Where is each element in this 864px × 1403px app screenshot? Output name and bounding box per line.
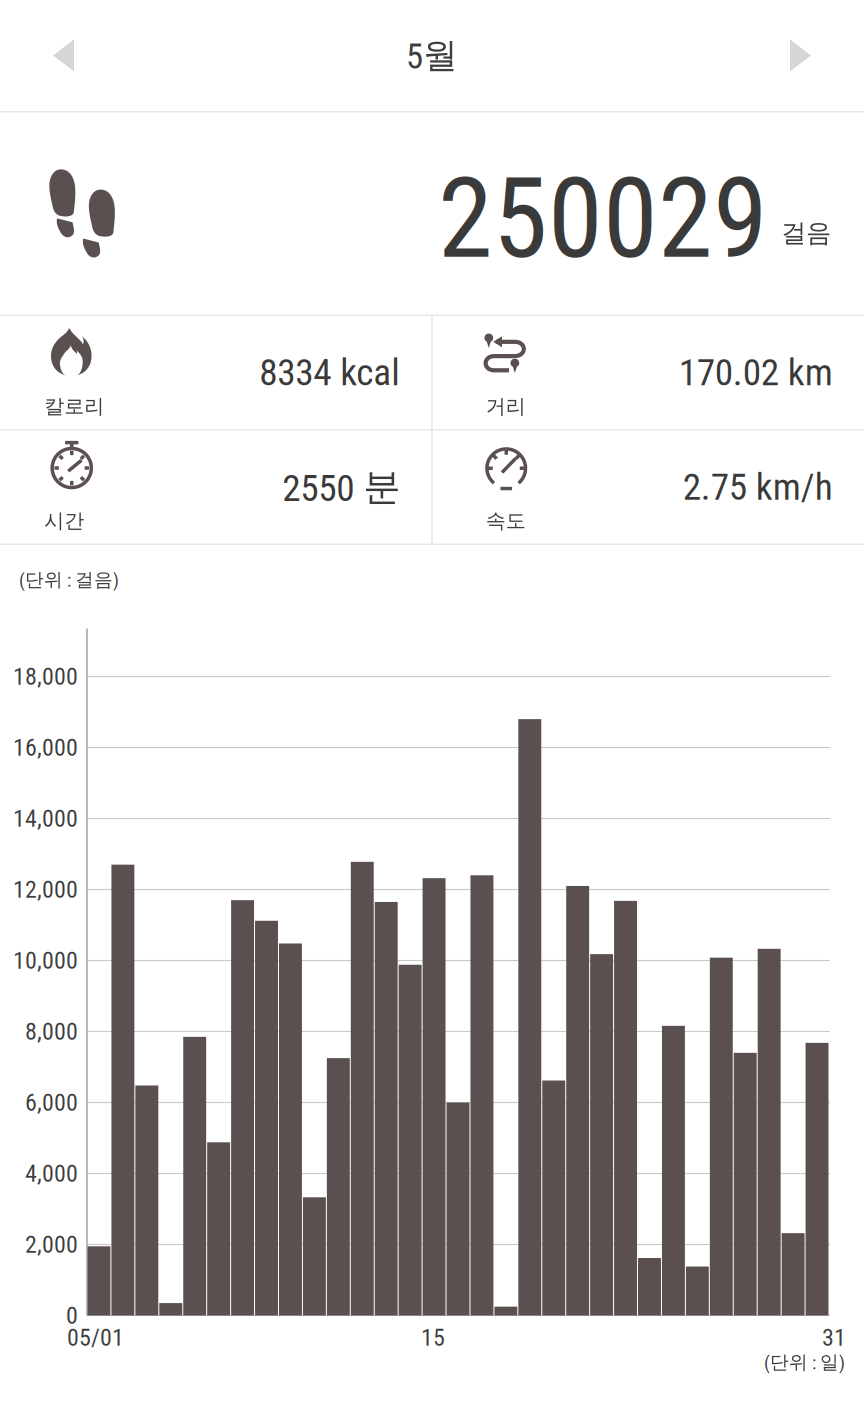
staticText: 시간 [44, 508, 84, 533]
staticText: 2550 분 [282, 463, 400, 510]
button[interactable]: 시간 [0, 430, 431, 543]
staticText: (단위 : 걸음) [19, 568, 119, 591]
staticText: 14,000 [13, 804, 78, 833]
staticText: 170.02 km [679, 351, 833, 394]
button[interactable]: 거리 [433, 316, 864, 429]
staticText: 05/01 [67, 1323, 124, 1352]
staticText: 4,000 [25, 1159, 78, 1188]
staticText: 걸음 [781, 217, 831, 249]
staticText: 속도 [486, 508, 526, 533]
staticText: 18,000 [13, 662, 78, 691]
staticText: 거리 [486, 394, 526, 419]
staticText: 16,000 [13, 733, 78, 762]
button[interactable]: Next month [750, 0, 864, 111]
staticText: 31 [822, 1323, 846, 1352]
staticText: 0 [66, 1301, 78, 1330]
button[interactable]: 속도 [433, 430, 864, 543]
staticText: 8334 kcal [259, 351, 400, 394]
staticText: 6,000 [25, 1088, 78, 1117]
button[interactable]: 칼로리 [0, 316, 431, 429]
staticText: 12,000 [13, 875, 78, 904]
staticText: 칼로리 [44, 394, 104, 419]
staticText: 10,000 [13, 946, 78, 975]
staticText: 8,000 [25, 1017, 78, 1046]
staticText: 15 [421, 1323, 445, 1352]
staticText: 5월 [406, 34, 458, 77]
staticText: 250029 [438, 154, 768, 284]
staticText: 2,000 [25, 1230, 78, 1259]
staticText: (단위 : 일) [764, 1350, 845, 1374]
staticText: 2.75 km/h [683, 465, 833, 509]
button[interactable]: Previous month [0, 0, 114, 111]
